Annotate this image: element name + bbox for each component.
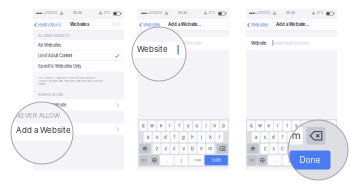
button[interactable]: w: [0, 0, 350, 187]
button[interactable]: p: [0, 0, 350, 187]
staticText: l: [219, 134, 220, 140]
button[interactable]: Websites: [0, 0, 350, 187]
button[interactable]: x: [0, 0, 350, 187]
button[interactable]: f: [0, 0, 350, 187]
button[interactable]: Done: [0, 0, 350, 187]
button[interactable]: a: [0, 0, 350, 187]
button[interactable]: m: [0, 0, 350, 187]
staticText: Add a Website: [16, 125, 71, 135]
staticText: y: [187, 123, 189, 128]
button[interactable]: r: [0, 0, 350, 187]
button[interactable]: l: [0, 0, 350, 187]
staticText: c: [281, 146, 284, 151]
button[interactable]: Delete: [0, 0, 350, 187]
button[interactable]: z: [0, 0, 350, 187]
button[interactable]: i: [0, 0, 350, 187]
button[interactable]: .: [0, 0, 350, 187]
button[interactable]: Limit Adult Content: [0, 0, 350, 187]
button[interactable]: Shift: [0, 0, 350, 187]
staticText: a: [255, 134, 257, 140]
button[interactable]: f: [0, 0, 350, 187]
staticText: Website: [251, 41, 266, 46]
staticText: e: [160, 123, 163, 128]
button[interactable]: g: [0, 0, 350, 187]
button[interactable]: a: [0, 0, 350, 187]
button[interactable]: e: [0, 0, 350, 187]
staticText: Websites: [143, 22, 160, 28]
button[interactable]: k: [0, 0, 350, 187]
button[interactable]: 123: [0, 0, 350, 187]
button[interactable]: Emoji keyboard: [0, 0, 350, 187]
staticText: i: [313, 123, 314, 128]
staticText: o: [213, 123, 216, 128]
button[interactable]: t: [0, 0, 350, 187]
button[interactable]: z: [0, 0, 350, 187]
button[interactable]: n: [0, 0, 350, 187]
button[interactable]: Emoji keyboard: [0, 0, 350, 187]
button[interactable]: .: [0, 0, 350, 187]
button[interactable]: d: [0, 0, 350, 187]
button[interactable]: c: [0, 0, 350, 187]
button[interactable]: Websites: [0, 0, 350, 187]
button[interactable]: x: [0, 0, 350, 187]
button[interactable]: Specific Websites Only: [0, 0, 350, 187]
button[interactable]: Add a Website: [0, 0, 350, 187]
staticText: .: [166, 157, 167, 163]
button[interactable]: /: [0, 0, 350, 187]
staticText: r: [169, 123, 171, 128]
button[interactable]: s: [0, 0, 350, 187]
button[interactable]: r: [0, 0, 350, 187]
button[interactable]: e: [0, 0, 350, 187]
button[interactable]: .com: [0, 0, 350, 187]
button[interactable]: q: [0, 0, 350, 187]
button[interactable]: Restrictions: [0, 0, 350, 187]
button[interactable]: b: [0, 0, 350, 187]
button[interactable]: y: [0, 0, 350, 187]
button[interactable]: j: [0, 0, 350, 187]
staticText: All Websites: [38, 43, 61, 48]
button[interactable]: w: [0, 0, 350, 187]
button[interactable]: m: [0, 0, 350, 187]
staticText: r: [277, 123, 279, 128]
button[interactable]: u: [0, 0, 350, 187]
button[interactable]: Done: [0, 0, 350, 187]
staticText: Done: [299, 155, 320, 165]
button[interactable]: Add a Website: [0, 0, 350, 187]
staticText: 37%: [208, 11, 215, 15]
staticText: p: [330, 123, 333, 128]
button[interactable]: u: [0, 0, 350, 187]
button[interactable]: h: [0, 0, 350, 187]
button[interactable]: /: [0, 0, 350, 187]
button[interactable]: 123: [0, 0, 350, 187]
button[interactable]: q: [0, 0, 350, 187]
button[interactable]: g: [0, 0, 350, 187]
staticText: n: [200, 146, 203, 151]
staticText: 09:36: [73, 11, 82, 15]
staticText: Add a Website...: [168, 22, 201, 27]
button[interactable]: All Websites: [0, 0, 350, 187]
button[interactable]: d: [0, 0, 350, 187]
button[interactable]: Edit: [0, 0, 350, 187]
button[interactable]: p: [0, 0, 350, 187]
button[interactable]: b: [0, 0, 350, 187]
staticText: t: [286, 123, 287, 128]
staticText: ALWAYS ALLOW: [38, 93, 63, 97]
button[interactable]: Delete: [0, 0, 350, 187]
staticText: w: [258, 123, 262, 128]
button[interactable]: n: [0, 0, 350, 187]
button[interactable]: v: [0, 0, 350, 187]
button[interactable]: c: [0, 0, 350, 187]
button[interactable]: .com: [0, 0, 350, 187]
button[interactable]: j: [0, 0, 350, 187]
button[interactable]: k: [0, 0, 350, 187]
button[interactable]: y: [0, 0, 350, 187]
button[interactable]: o: [0, 0, 350, 187]
button[interactable]: i: [0, 0, 350, 187]
button[interactable]: h: [0, 0, 350, 187]
button[interactable]: v: [0, 0, 350, 187]
button[interactable]: o: [0, 0, 350, 187]
button[interactable]: Shift: [0, 0, 350, 187]
button[interactable]: s: [0, 0, 350, 187]
button[interactable]: l: [0, 0, 350, 187]
button[interactable]: t: [0, 0, 350, 187]
